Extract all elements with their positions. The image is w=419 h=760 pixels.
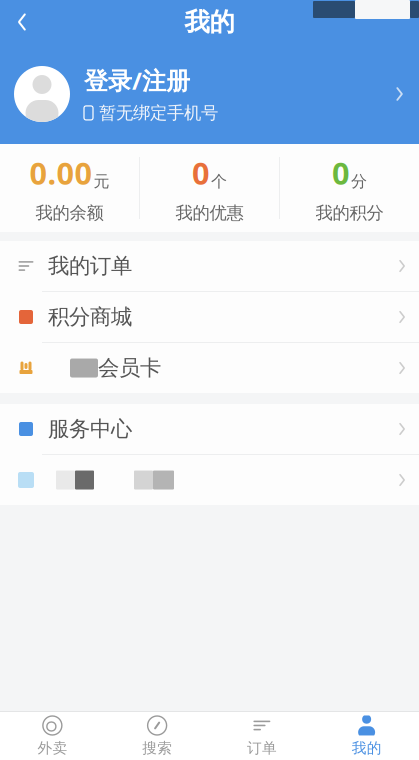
button[interactable]: 外卖	[0, 712, 105, 760]
staticText: 0	[192, 152, 210, 193]
button[interactable]	[0, 455, 419, 505]
button[interactable]: 订单	[209, 712, 314, 760]
staticText: 我的	[352, 739, 382, 757]
staticText: 搜索	[142, 739, 172, 757]
staticText: 外卖	[37, 739, 67, 757]
staticText: 服务中心	[48, 416, 132, 442]
staticText: 登录/注册	[84, 64, 190, 96]
staticText: 我的	[184, 6, 234, 37]
staticText: 我的余额	[35, 202, 103, 223]
button[interactable]: 积分商城	[0, 292, 419, 343]
button[interactable]: 0	[280, 144, 419, 232]
staticText: 暂无绑定手机号	[99, 102, 218, 124]
staticText: 0.00	[29, 152, 92, 193]
staticText: 会员卡	[98, 355, 161, 381]
staticText: 我的订单	[48, 253, 132, 279]
staticText: 积分商城	[48, 304, 132, 330]
button[interactable]: 我的订单	[0, 241, 419, 292]
button[interactable]: 0.00	[0, 144, 139, 232]
button[interactable]: 登录/注册	[0, 44, 419, 144]
staticText: 元	[93, 172, 109, 191]
button[interactable]: 搜索	[105, 712, 210, 760]
button[interactable]: 我的	[314, 712, 419, 760]
staticText: 我的优惠	[175, 202, 243, 223]
staticText: 我的积分	[315, 202, 383, 223]
staticText: 0	[332, 152, 350, 193]
button[interactable]: 0	[140, 144, 279, 232]
button[interactable]: 服务中心	[0, 404, 419, 455]
staticText: 分	[351, 172, 367, 191]
staticText: 个	[211, 172, 227, 191]
button[interactable]: 返回	[0, 0, 44, 44]
button[interactable]: 会员卡	[0, 343, 419, 393]
staticText: 订单	[247, 739, 277, 757]
